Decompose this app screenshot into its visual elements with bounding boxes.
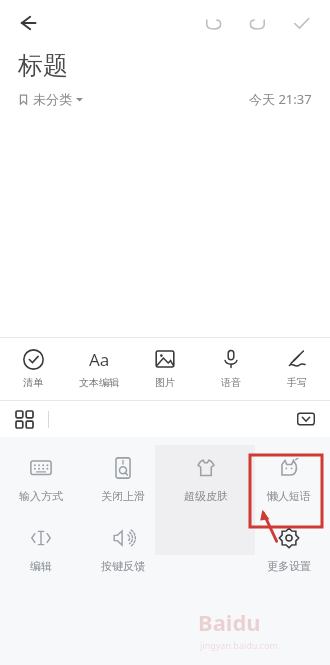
staticText: 手写 [287, 376, 307, 389]
staticText: 输入方式 [19, 489, 63, 503]
button[interactable]: Back [8, 3, 48, 43]
staticText: Baidu [198, 607, 261, 637]
button[interactable]: 超级皮肤 [164, 451, 247, 507]
staticText: 今天 21:37 [249, 90, 312, 108]
button[interactable]: Keyboard tools [8, 403, 40, 435]
button[interactable]: 输入方式 [0, 451, 82, 507]
staticText: 懒人短语 [267, 489, 311, 503]
staticText: 按键反馈 [101, 559, 145, 573]
staticText: jingyan.baidu.com [200, 639, 278, 651]
button[interactable]: Undo [194, 4, 232, 42]
staticText: 图片 [155, 376, 175, 389]
button[interactable]: Collapse keyboard [290, 403, 322, 435]
staticText: 关闭上滑 [101, 489, 145, 503]
button[interactable]: 手写 [264, 338, 330, 400]
button[interactable]: 关闭上滑 [82, 451, 164, 507]
button[interactable]: Done [282, 4, 320, 42]
staticText: 标题 [18, 50, 68, 81]
staticText: 语音 [221, 376, 241, 389]
button[interactable]: Redo [238, 4, 276, 42]
staticText: 编辑 [30, 559, 52, 573]
staticText: 文本编辑 [79, 376, 119, 389]
button[interactable]: 更多设置 [247, 521, 330, 577]
button[interactable]: 按键反馈 [82, 521, 164, 577]
button[interactable]: 图片 [132, 338, 198, 400]
staticText: 更多设置 [267, 559, 311, 573]
button[interactable]: Aa [66, 338, 132, 400]
staticText: 未分类 [33, 91, 72, 107]
button[interactable]: 编辑 [0, 521, 82, 577]
button[interactable]: 懒人短语 [247, 451, 330, 507]
button[interactable]: 清单 [0, 338, 66, 400]
staticText: Aa [89, 348, 110, 370]
button[interactable]: 语音 [198, 338, 264, 400]
button[interactable]: 未分类 [18, 89, 83, 109]
staticText: 超级皮肤 [184, 489, 228, 503]
staticText: 清单 [23, 376, 43, 389]
